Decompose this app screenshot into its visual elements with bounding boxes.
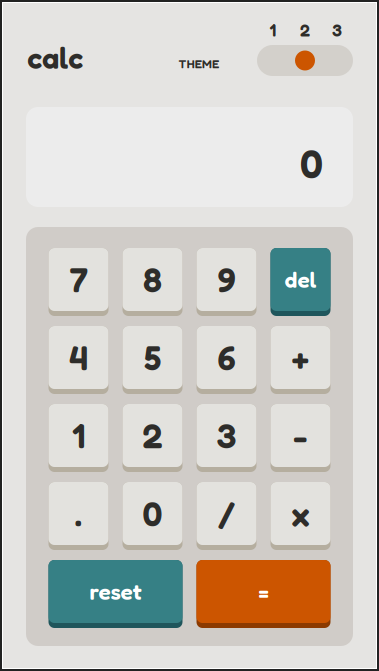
button[interactable]: 7 — [48, 248, 108, 316]
staticText: 1 — [72, 414, 85, 456]
staticText: 4 — [69, 336, 88, 378]
staticText: 1 — [269, 19, 276, 40]
staticText: = — [258, 578, 268, 605]
staticText: 6 — [217, 336, 235, 378]
staticText: 9 — [217, 258, 235, 300]
button[interactable]: 6 — [196, 326, 256, 394]
button[interactable]: - — [270, 404, 330, 472]
button[interactable] — [257, 45, 353, 76]
staticText: 7 — [69, 258, 87, 300]
staticText: reset — [89, 578, 141, 605]
staticText: del — [284, 266, 316, 293]
staticText: 2 — [142, 414, 162, 456]
button[interactable]: 0 — [122, 482, 182, 550]
button[interactable]: reset — [48, 560, 182, 628]
button[interactable]: 1 — [48, 404, 108, 472]
staticText: 2 — [300, 19, 310, 40]
button[interactable]: 8 — [122, 248, 182, 316]
button[interactable]: + — [270, 326, 330, 394]
staticText: 3 — [216, 414, 236, 456]
button[interactable]: 4 — [48, 326, 108, 394]
button[interactable]: 3 — [196, 404, 256, 472]
button[interactable]: x — [270, 482, 330, 550]
staticText: . — [74, 492, 82, 534]
staticText: 5 — [144, 336, 161, 378]
staticText: x — [291, 492, 309, 534]
button[interactable]: 5 — [122, 326, 182, 394]
button[interactable]: / — [196, 482, 256, 550]
staticText: 3 — [332, 19, 342, 40]
button[interactable]: 2 — [122, 404, 182, 472]
staticText: + — [291, 336, 309, 378]
button[interactable]: 9 — [196, 248, 256, 316]
staticText: - — [293, 414, 307, 456]
staticText: 0 — [300, 139, 323, 188]
button[interactable]: = — [196, 560, 330, 628]
button[interactable]: del — [270, 248, 330, 316]
staticText: 0 — [142, 492, 162, 534]
staticText: 8 — [143, 258, 162, 300]
button[interactable]: . — [48, 482, 108, 550]
staticText: / — [218, 492, 235, 534]
staticText: THEME — [179, 56, 219, 71]
staticText: calc — [27, 39, 83, 76]
